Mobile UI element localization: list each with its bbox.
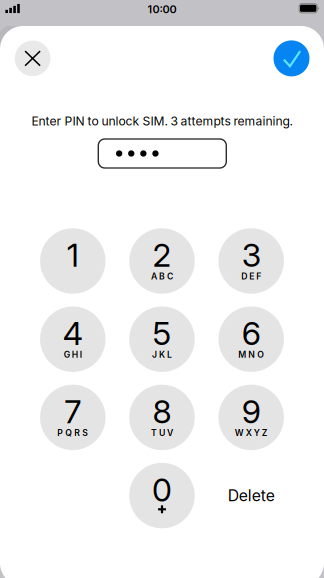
staticText: 7 <box>64 392 81 431</box>
staticText: Delete <box>228 486 275 505</box>
button[interactable]: Confirm <box>273 40 309 76</box>
button[interactable]: 2 <box>129 228 195 294</box>
button[interactable]: 0 <box>129 463 195 528</box>
staticText: 5 <box>152 314 171 353</box>
staticText: 3 <box>242 236 261 274</box>
button[interactable]: 6 <box>218 306 284 372</box>
staticText: T U V <box>151 428 173 438</box>
staticText: 9 <box>242 392 261 431</box>
button[interactable]: Close <box>15 41 50 76</box>
button[interactable]: 3 <box>218 228 284 294</box>
staticText: M N O <box>238 349 264 360</box>
staticText: J K L <box>152 349 172 360</box>
staticText: 4 <box>63 314 83 353</box>
staticText: D E F <box>241 271 261 282</box>
staticText: W X Y Z <box>235 428 268 438</box>
staticText: 1 <box>67 236 79 274</box>
button[interactable]: 1 <box>40 228 105 294</box>
staticText: P Q R S <box>57 428 88 438</box>
staticText: 8 <box>152 392 171 431</box>
staticText: Enter PIN to unlock SIM. 3 attempts rema… <box>31 114 292 128</box>
staticText: 0 <box>152 470 172 509</box>
staticText: 10:00 <box>147 3 176 16</box>
staticText: G H I <box>64 349 82 360</box>
button[interactable]: Delete <box>218 463 284 528</box>
staticText: 6 <box>242 314 261 353</box>
button[interactable]: 9 <box>218 385 284 450</box>
button[interactable]: 7 <box>40 385 105 450</box>
staticText: A B C <box>151 271 173 282</box>
button[interactable]: 8 <box>129 385 195 450</box>
button[interactable]: 5 <box>129 306 195 372</box>
staticText: 2 <box>152 236 171 274</box>
button[interactable]: 4 <box>40 306 105 372</box>
